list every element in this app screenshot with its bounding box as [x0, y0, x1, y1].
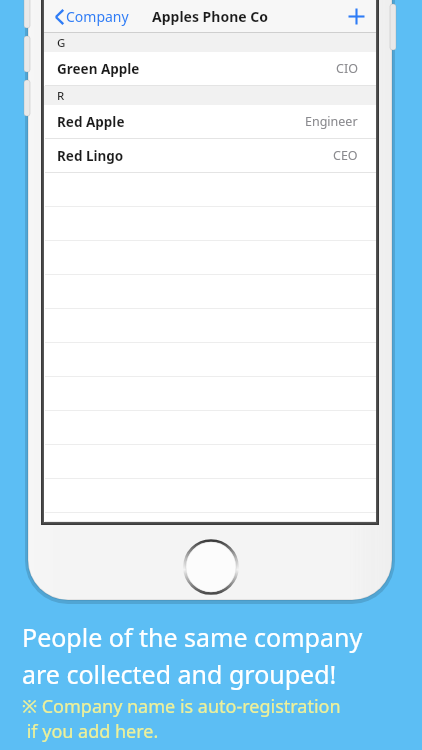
staticText: CIO — [336, 60, 358, 77]
staticText: G — [57, 35, 66, 51]
button[interactable]: Company — [44, 0, 137, 33]
staticText: if you add here. — [22, 719, 159, 744]
staticText: Green Apple — [57, 60, 140, 78]
staticText: Red Lingo — [57, 147, 124, 165]
staticText: Engineer — [305, 113, 358, 130]
staticText: Apples Phone Co — [152, 7, 268, 26]
staticText: CEO — [333, 147, 358, 164]
button[interactable]: Green Apple — [44, 52, 376, 86]
button[interactable]: Red Apple — [44, 105, 376, 139]
button[interactable]: Add person — [336, 0, 376, 33]
staticText: People of the same company — [22, 620, 363, 654]
staticText: Red Apple — [57, 113, 125, 131]
staticText: R — [57, 88, 65, 104]
staticText: Company — [66, 7, 129, 26]
button[interactable]: Red Lingo — [44, 139, 376, 173]
staticText: are collected and grouped! — [22, 657, 337, 691]
staticText: ※ Company name is auto-registration — [22, 694, 341, 719]
